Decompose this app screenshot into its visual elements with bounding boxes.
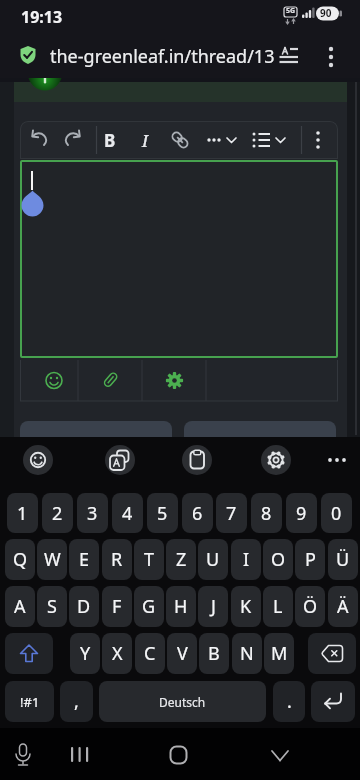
staticText: 9 — [296, 501, 307, 526]
button[interactable]: 4 — [112, 493, 143, 533]
staticText: S — [47, 594, 57, 619]
staticText: I — [142, 130, 149, 152]
button[interactable]: P — [295, 539, 325, 580]
button[interactable] — [97, 126, 125, 154]
button[interactable]: Ü — [328, 539, 358, 580]
staticText: G — [142, 594, 156, 619]
button[interactable]: H — [166, 586, 196, 627]
staticText: V — [177, 641, 188, 666]
staticText: 5G — [286, 6, 296, 16]
button[interactable] — [166, 126, 194, 154]
button[interactable] — [184, 421, 336, 437]
staticText: A — [14, 594, 26, 619]
button[interactable] — [99, 681, 266, 722]
button[interactable] — [26, 126, 54, 154]
staticText: 8 — [261, 501, 272, 526]
button[interactable] — [131, 126, 159, 154]
button[interactable] — [246, 126, 288, 154]
staticText: T — [144, 547, 155, 572]
button[interactable]: C — [135, 633, 165, 674]
button[interactable] — [105, 445, 135, 475]
button[interactable]: 1 — [7, 493, 38, 533]
button[interactable]: Q — [5, 539, 35, 580]
button[interactable]: 9 — [286, 493, 317, 533]
staticText: D — [77, 594, 91, 619]
staticText: 90 — [320, 6, 332, 20]
button[interactable]: 0 — [321, 493, 352, 533]
staticText: X — [112, 641, 123, 666]
button[interactable]: Z — [166, 539, 196, 580]
button[interactable]: T — [134, 539, 164, 580]
staticText: H — [174, 594, 188, 619]
button[interactable]: D — [69, 586, 99, 627]
button[interactable]: F — [102, 586, 132, 627]
button[interactable]: . — [273, 681, 305, 722]
button[interactable] — [20, 360, 78, 401]
button[interactable]: Ö — [295, 586, 325, 627]
button[interactable]: 5 — [147, 493, 178, 533]
button[interactable] — [279, 47, 299, 65]
button[interactable]: 7 — [216, 493, 247, 533]
staticText: E — [79, 547, 90, 572]
staticText: U — [206, 547, 220, 572]
button[interactable]: J — [198, 586, 228, 627]
button[interactable]: O — [263, 539, 293, 580]
button[interactable]: !#1 — [5, 681, 54, 722]
staticText: L — [273, 594, 283, 619]
button[interactable]: U — [198, 539, 228, 580]
button[interactable]: 6 — [182, 493, 213, 533]
staticText: C — [144, 641, 156, 666]
button[interactable] — [148, 360, 206, 401]
staticText: 4 — [122, 501, 133, 526]
button[interactable]: 3 — [77, 493, 108, 533]
button[interactable] — [182, 445, 212, 475]
button[interactable]: Y — [70, 633, 100, 674]
button[interactable]: I — [231, 539, 261, 580]
button[interactable] — [308, 633, 356, 674]
button[interactable]: M — [264, 633, 294, 674]
button[interactable]: 2 — [42, 493, 73, 533]
staticText: 3 — [87, 501, 98, 526]
button[interactable] — [20, 160, 338, 358]
button[interactable] — [311, 681, 355, 722]
button[interactable]: K — [231, 586, 261, 627]
button[interactable] — [12, 743, 34, 769]
staticText: 6 — [192, 501, 203, 526]
staticText: Z — [176, 547, 187, 572]
button[interactable]: N — [232, 633, 262, 674]
button[interactable]: the-greenleaf.in/thread/13 — [14, 36, 270, 78]
button[interactable]: 8 — [251, 493, 282, 533]
button[interactable]: Ä — [328, 586, 358, 627]
button[interactable]: W — [37, 539, 67, 580]
button[interactable]: L — [263, 586, 293, 627]
button[interactable] — [261, 445, 291, 475]
button[interactable] — [268, 746, 292, 764]
button[interactable] — [322, 44, 340, 70]
button[interactable] — [325, 448, 349, 472]
staticText: B — [208, 641, 220, 666]
button[interactable]: S — [37, 586, 67, 627]
button[interactable] — [5, 633, 53, 674]
button[interactable]: R — [102, 539, 132, 580]
button[interactable] — [23, 445, 53, 475]
staticText: Ä — [337, 594, 349, 619]
button[interactable]: E — [69, 539, 99, 580]
staticText: W — [44, 547, 61, 572]
button[interactable]: G — [134, 586, 164, 627]
button[interactable] — [66, 746, 94, 764]
staticText: 2 — [52, 501, 63, 526]
staticText: F — [112, 594, 122, 619]
button[interactable]: A — [5, 586, 35, 627]
button[interactable] — [58, 126, 86, 154]
staticText: 0 — [331, 501, 342, 526]
button[interactable] — [201, 126, 243, 154]
button[interactable] — [20, 421, 172, 437]
button[interactable] — [84, 360, 142, 401]
button[interactable]: X — [102, 633, 132, 674]
button[interactable] — [304, 126, 332, 154]
staticText: the-greenleaf.in/thread/13 — [50, 44, 275, 69]
button[interactable]: V — [167, 633, 197, 674]
button[interactable] — [168, 744, 190, 766]
button[interactable]: , — [60, 681, 93, 722]
button[interactable]: B — [199, 633, 229, 674]
